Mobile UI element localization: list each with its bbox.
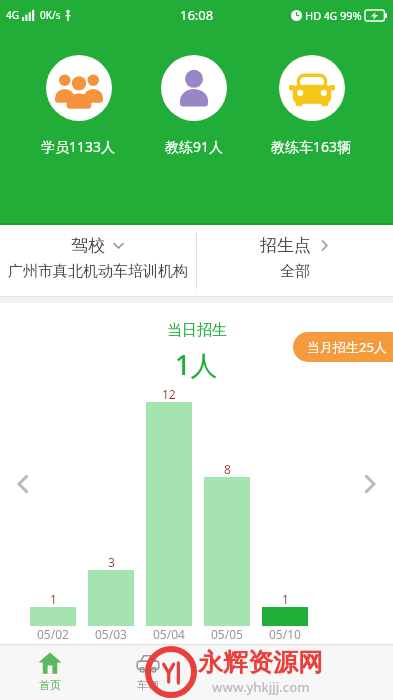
staticText: 12 — [162, 386, 176, 402]
staticText: 99% — [340, 8, 362, 23]
button[interactable]: 12 — [146, 386, 192, 626]
staticText: 3 — [108, 554, 115, 570]
staticText: HD — [305, 8, 322, 23]
button[interactable]: 3 — [88, 386, 134, 626]
button[interactable]: 驾校 — [0, 225, 196, 297]
button[interactable]: 学员1133人 — [37, 55, 120, 156]
button[interactable]: 8 — [204, 386, 250, 626]
button[interactable]: 教练91人 — [157, 55, 231, 156]
button[interactable]: Next — [353, 467, 387, 501]
staticText: 永辉资源网 — [198, 647, 323, 678]
staticText: 首页 — [39, 678, 61, 692]
staticText: 05/04 — [153, 626, 185, 642]
staticText: 当月招生25人 — [307, 338, 387, 356]
staticText: 0K/s — [40, 8, 61, 22]
staticText: 车辆 — [137, 678, 159, 692]
button[interactable]: Previous — [6, 467, 40, 501]
button[interactable] — [197, 644, 295, 700]
staticText: 4G — [6, 8, 19, 22]
staticText: 学员1133人 — [41, 137, 116, 156]
staticText: 教练车163辆 — [271, 137, 352, 156]
staticText: 05/02 — [37, 626, 69, 642]
button[interactable]: 1 — [30, 386, 76, 626]
staticText: 招生点 — [260, 235, 311, 256]
button[interactable]: 车辆 — [99, 644, 197, 700]
staticText: 4G — [324, 9, 337, 23]
button[interactable]: 1 — [262, 386, 308, 626]
staticText: 当日招生 — [167, 321, 227, 340]
button[interactable]: 当月招生25人 — [293, 332, 393, 362]
staticText: 05/05 — [211, 626, 243, 642]
button[interactable] — [295, 644, 393, 700]
staticText: 驾校 — [71, 235, 105, 256]
staticText: 16:08 — [180, 6, 214, 24]
staticText: 教练91人 — [165, 137, 224, 156]
staticText: 05/03 — [95, 626, 127, 642]
staticText: 1人 — [175, 346, 218, 383]
staticText: 1 — [50, 591, 57, 607]
staticText: 05/10 — [269, 626, 301, 642]
button[interactable]: 首页 — [0, 644, 99, 700]
staticText: 8 — [224, 461, 231, 477]
staticText: 全部 — [280, 262, 310, 281]
button[interactable]: 教练车163辆 — [267, 55, 356, 156]
button[interactable]: 招生点 — [197, 225, 393, 297]
staticText: www.yhkjjj.com — [212, 678, 310, 696]
staticText: 广州市真北机动车培训机构 — [8, 262, 188, 281]
staticText: 1 — [282, 591, 289, 607]
